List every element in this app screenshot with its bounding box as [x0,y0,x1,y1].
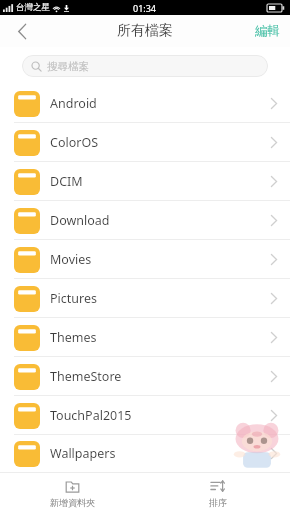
button[interactable]: ThemeStore [0,357,290,396]
staticText: TouchPal2015 [50,407,270,424]
button[interactable]: Themes [0,318,290,357]
staticText: DCIM [50,173,270,190]
button[interactable]: Wallpapers [0,435,290,472]
button[interactable]: 搜尋檔案 [22,55,268,77]
button[interactable]: ColorOS [0,123,290,162]
staticText: 編輯 [255,23,280,39]
button[interactable]: 排序 [145,472,290,515]
button[interactable]: 新增資料夾 [0,472,145,515]
staticText: 台灣之星 [16,2,50,13]
staticText: 所有檔案 [117,22,173,40]
button[interactable]: Back [0,15,44,47]
button[interactable]: Movies [0,240,290,279]
staticText: 新增資料夾 [50,497,95,508]
button[interactable]: Android [0,84,290,123]
staticText: ThemeStore [50,368,270,385]
button[interactable]: Download [0,201,290,240]
button[interactable]: Pictures [0,279,290,318]
staticText: Download [50,212,270,229]
staticText: Wallpapers [50,445,270,462]
staticText: Android [50,95,270,112]
staticText: 搜尋檔案 [47,60,89,73]
staticText: 01:34 [133,2,157,14]
button[interactable]: DCIM [0,162,290,201]
staticText: Movies [50,251,270,268]
staticText: 排序 [209,497,227,508]
staticText: ColorOS [50,134,270,151]
button[interactable]: 編輯 [245,15,290,47]
staticText: Pictures [50,290,270,307]
staticText: Themes [50,329,270,346]
button[interactable]: TouchPal2015 [0,396,290,435]
